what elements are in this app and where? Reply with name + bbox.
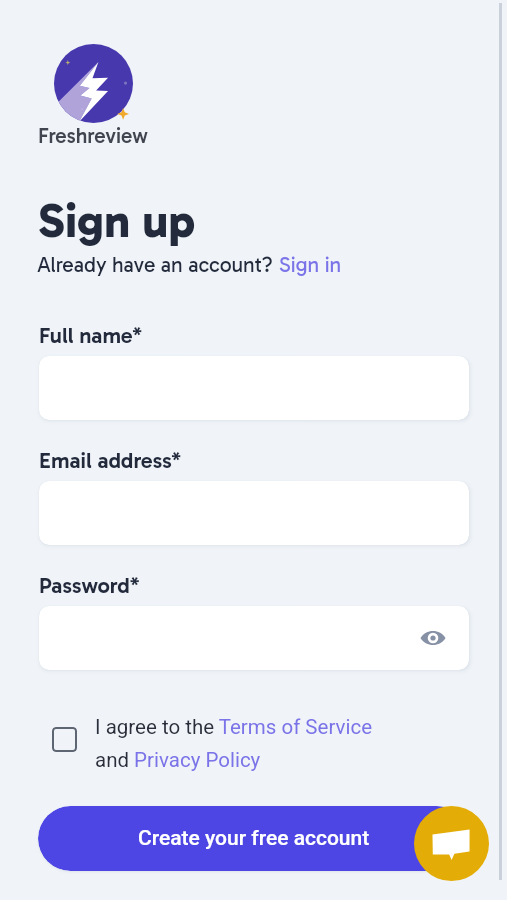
staticText: Freshreview bbox=[38, 123, 148, 148]
staticText: Already have an account? bbox=[37, 252, 279, 277]
button[interactable]: Open chat bbox=[414, 806, 489, 881]
button[interactable]: I agree to the Terms of Service and Priv… bbox=[95, 708, 381, 774]
button[interactable]: Show password bbox=[417, 622, 449, 654]
button[interactable]: Freshreview logo bbox=[54, 44, 133, 123]
button[interactable]: I agree to the Terms of Service and Priv… bbox=[52, 727, 77, 752]
staticText: Create your free account bbox=[138, 826, 370, 851]
button[interactable]: Create your free account bbox=[38, 806, 469, 871]
staticText: Full name* bbox=[39, 322, 143, 348]
staticText: Password* bbox=[39, 572, 140, 598]
staticText: Email address* bbox=[39, 447, 182, 473]
button[interactable]: Sign in bbox=[279, 252, 342, 277]
staticText: Sign up bbox=[38, 193, 196, 249]
button[interactable]: Password* bbox=[39, 606, 469, 670]
